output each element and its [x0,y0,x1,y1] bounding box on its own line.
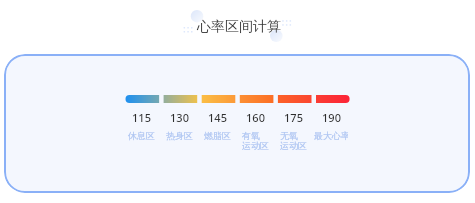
staticText: 休息区 [128,130,155,141]
staticText: 无氧 运动区 [280,130,307,152]
staticText: 有氧 运动区 [242,130,269,152]
staticText: 130 [170,110,189,125]
staticText: 最大心率 [314,130,348,141]
staticText: 145 [208,110,227,125]
staticText: 175 [284,110,303,125]
staticText: 燃脂区 [204,130,231,141]
staticText: 115 [132,110,151,125]
staticText: 160 [246,110,265,125]
staticText: 190 [322,110,341,125]
staticText: 心率区间计算 [197,18,281,36]
staticText: 热身区 [166,130,193,141]
